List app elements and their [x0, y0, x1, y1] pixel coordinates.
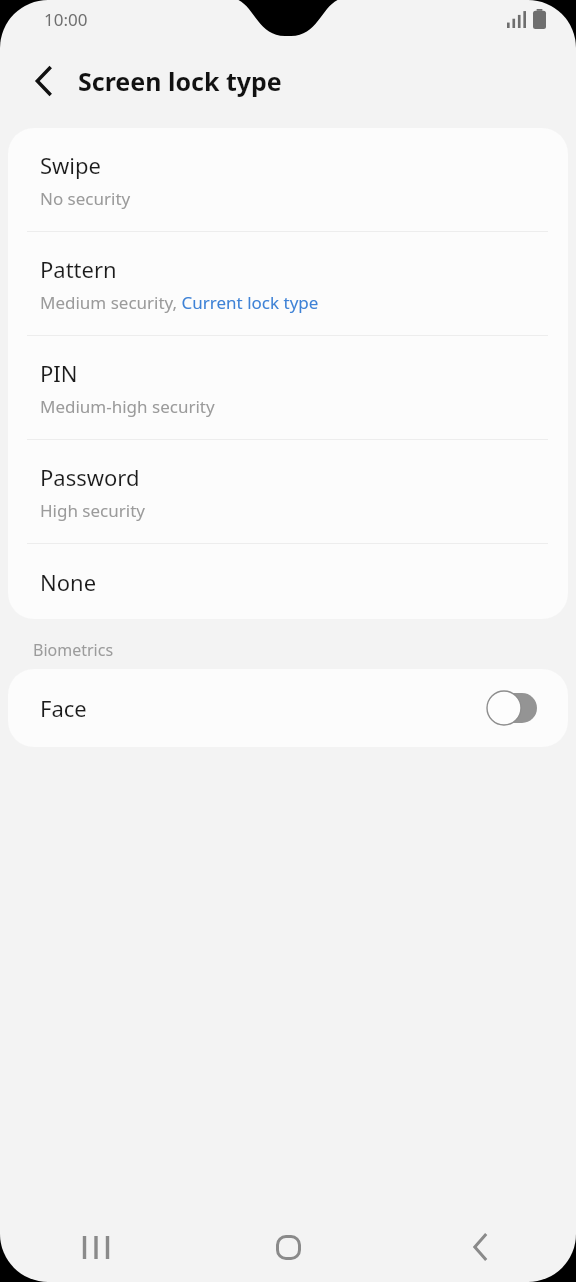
staticText: 10:00	[44, 8, 88, 31]
button[interactable]: Pattern	[8, 232, 568, 335]
staticText: Biometrics	[33, 639, 114, 661]
button[interactable]: Face unlock toggle	[486, 690, 538, 726]
button[interactable]: PIN	[8, 336, 568, 439]
button[interactable]: Swipe	[8, 128, 568, 231]
button[interactable]: Face	[8, 669, 568, 747]
button[interactable]: None	[8, 544, 568, 619]
staticText: No security	[40, 187, 131, 210]
button[interactable]: Home	[192, 1212, 384, 1282]
button[interactable]: Back	[384, 1212, 576, 1282]
staticText: Medium security, Current lock type	[40, 291, 319, 314]
staticText: High security	[40, 499, 145, 522]
button[interactable]: Back	[20, 57, 68, 105]
staticText: Screen lock type	[78, 64, 282, 98]
button[interactable]: Recents	[0, 1212, 192, 1282]
staticText: None	[40, 567, 97, 597]
staticText: Face	[40, 693, 87, 723]
staticText: PIN	[40, 358, 78, 388]
staticText: Pattern	[40, 254, 117, 284]
staticText: Swipe	[40, 150, 101, 180]
staticText: Medium-high security	[40, 395, 215, 418]
staticText: Password	[40, 462, 140, 492]
button[interactable]: Password	[8, 440, 568, 543]
